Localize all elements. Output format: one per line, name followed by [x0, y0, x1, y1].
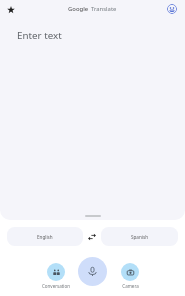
button[interactable]: Spanish	[101, 227, 178, 246]
staticText: Google	[68, 5, 89, 13]
staticText: Translate	[91, 5, 117, 13]
button[interactable]: Voice input	[78, 257, 107, 286]
button[interactable]: Enter text	[0, 0, 185, 220]
staticText: English	[37, 234, 53, 240]
staticText: Conversation	[42, 283, 70, 289]
staticText: Camera	[122, 283, 139, 289]
staticText: Enter text	[17, 29, 62, 42]
button[interactable]: Conversation	[37, 263, 75, 289]
button[interactable]: Camera	[111, 263, 149, 289]
button[interactable]: Account	[167, 4, 177, 14]
button[interactable]: Swap languages	[83, 227, 101, 246]
button[interactable]: Saved	[4, 3, 17, 16]
staticText: Spanish	[131, 234, 148, 240]
button[interactable]: English	[7, 227, 83, 246]
